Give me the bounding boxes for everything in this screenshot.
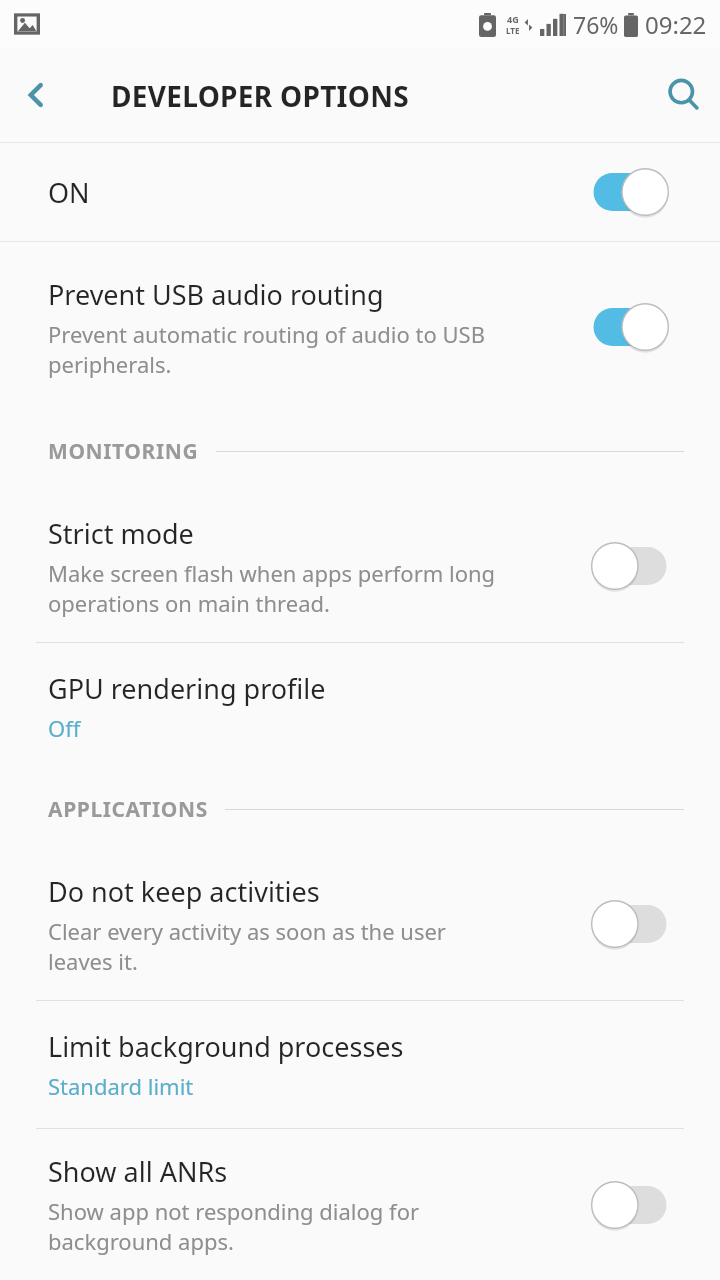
button[interactable]: Show all ANRs bbox=[0, 1129, 720, 1280]
staticText: Prevent USB audio routing bbox=[48, 276, 384, 313]
button[interactable]: Toggle off bbox=[592, 900, 668, 948]
staticText: Strict mode bbox=[48, 515, 194, 552]
button[interactable]: GPU rendering profile bbox=[0, 643, 720, 770]
button[interactable]: Toggle off bbox=[592, 542, 668, 590]
staticText: Show all ANRs bbox=[48, 1153, 228, 1190]
staticText: DEVELOPER OPTIONS bbox=[111, 77, 410, 115]
staticText: Standard limit bbox=[48, 1071, 194, 1101]
staticText: 4G bbox=[507, 13, 519, 25]
staticText: 76% bbox=[573, 9, 619, 40]
button[interactable]: Toggle on bbox=[592, 303, 668, 351]
staticText: 09:22 bbox=[645, 8, 707, 41]
staticText: ON bbox=[48, 174, 90, 211]
button[interactable]: Back bbox=[0, 59, 72, 131]
staticText: Off bbox=[48, 713, 81, 743]
staticText: Prevent automatic routing of audio to US… bbox=[48, 319, 485, 379]
staticText: LTE bbox=[506, 25, 520, 36]
staticText: Clear every activity as soon as the user… bbox=[48, 916, 446, 976]
staticText: Do not keep activities bbox=[48, 873, 320, 910]
staticText: GPU rendering profile bbox=[48, 670, 326, 707]
staticText: MONITORING bbox=[48, 437, 199, 466]
staticText: Show app not responding dialog for backg… bbox=[48, 1196, 420, 1256]
button[interactable]: Toggle off bbox=[592, 1181, 668, 1229]
button[interactable]: Prevent USB audio routing bbox=[0, 242, 720, 412]
button[interactable]: Search bbox=[648, 59, 720, 131]
staticText: APPLICATIONS bbox=[48, 795, 208, 824]
staticText: Limit background processes bbox=[48, 1028, 404, 1065]
staticText: Make screen flash when apps perform long… bbox=[48, 558, 496, 618]
button[interactable]: Strict mode bbox=[0, 490, 720, 642]
button[interactable]: Limit background processes bbox=[0, 1001, 720, 1128]
button[interactable]: ON bbox=[0, 143, 720, 241]
button[interactable]: Toggle on bbox=[592, 168, 668, 216]
button[interactable]: Do not keep activities bbox=[0, 848, 720, 1000]
